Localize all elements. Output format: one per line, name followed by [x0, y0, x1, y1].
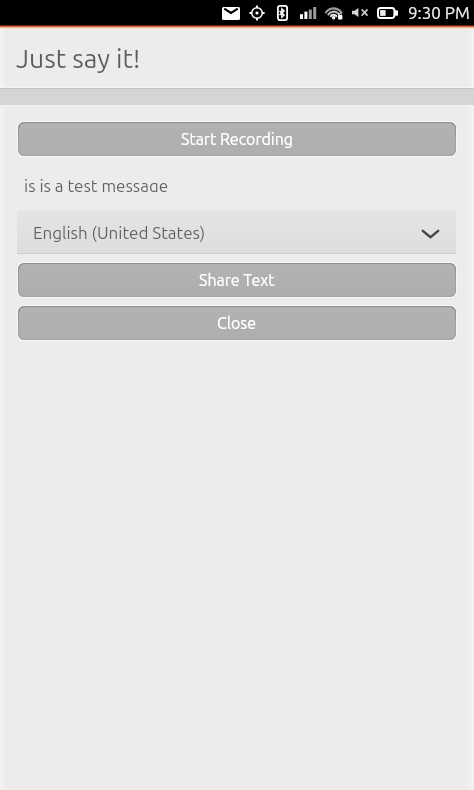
other: Location	[249, 5, 265, 21]
other: Battery	[377, 7, 398, 19]
staticText: 9:30 PM	[408, 3, 470, 22]
button[interactable]: Close	[17, 305, 457, 341]
staticText: Share Text	[199, 271, 275, 289]
staticText: Start Recording	[181, 130, 294, 148]
button[interactable]: Start Recording	[17, 121, 457, 157]
staticText: Just say it!	[16, 43, 141, 73]
other: Sound muted	[352, 8, 368, 17]
staticText: English (United States)	[33, 223, 206, 242]
other: Bluetooth	[277, 5, 288, 21]
other: Select language	[422, 230, 439, 238]
staticText: is is a test message	[24, 176, 169, 192]
other: Unread mail	[222, 7, 240, 20]
staticText: Close	[217, 314, 257, 332]
other: Wi-Fi	[326, 6, 343, 20]
button[interactable]: Share Text	[17, 262, 457, 298]
button[interactable]: English (United States)	[17, 211, 456, 254]
other: Mobile signal	[300, 7, 316, 19]
